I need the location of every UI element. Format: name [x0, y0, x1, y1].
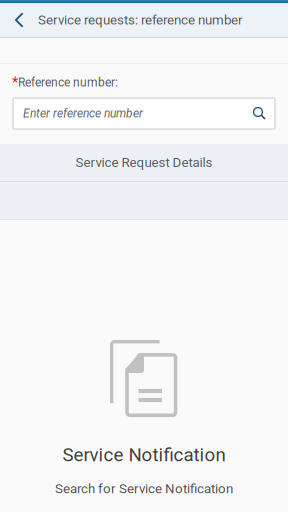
staticText: Enter reference number — [23, 106, 143, 121]
staticText: Service Notification — [62, 444, 225, 466]
staticText: Service requests: reference number — [38, 12, 243, 28]
staticText: Reference number: — [18, 75, 118, 90]
staticText: Search for Service Notification — [55, 481, 233, 496]
staticText: Service Request Details — [75, 155, 212, 170]
staticText: * — [12, 74, 18, 91]
button[interactable]: Service Request Details — [0, 144, 288, 181]
button[interactable]: Back — [0, 3, 38, 37]
button[interactable]: Enter reference number — [13, 98, 275, 129]
